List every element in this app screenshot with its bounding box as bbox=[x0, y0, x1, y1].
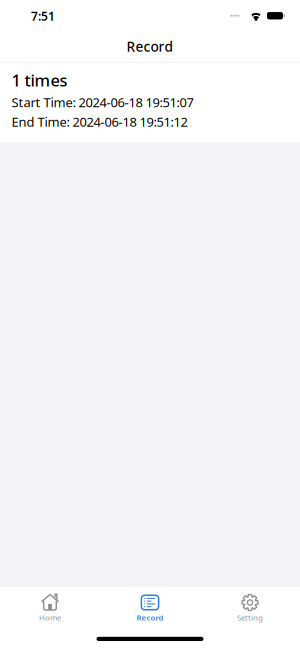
staticText: Record bbox=[126, 37, 173, 56]
staticText: 7:51 bbox=[31, 8, 55, 24]
staticText: Record bbox=[136, 612, 163, 623]
staticText: Home bbox=[39, 612, 61, 623]
staticText: Start Time: 2024-06-18 19:51:07 bbox=[11, 93, 193, 111]
staticText: Setting bbox=[237, 612, 263, 623]
button[interactable]: Setting bbox=[200, 587, 300, 631]
button[interactable]: 1 times bbox=[0, 63, 300, 143]
button[interactable]: Home bbox=[0, 587, 100, 631]
button[interactable]: Record bbox=[100, 587, 200, 631]
staticText: End Time: 2024-06-18 19:51:12 bbox=[11, 113, 187, 131]
staticText: 1 times bbox=[11, 69, 67, 91]
